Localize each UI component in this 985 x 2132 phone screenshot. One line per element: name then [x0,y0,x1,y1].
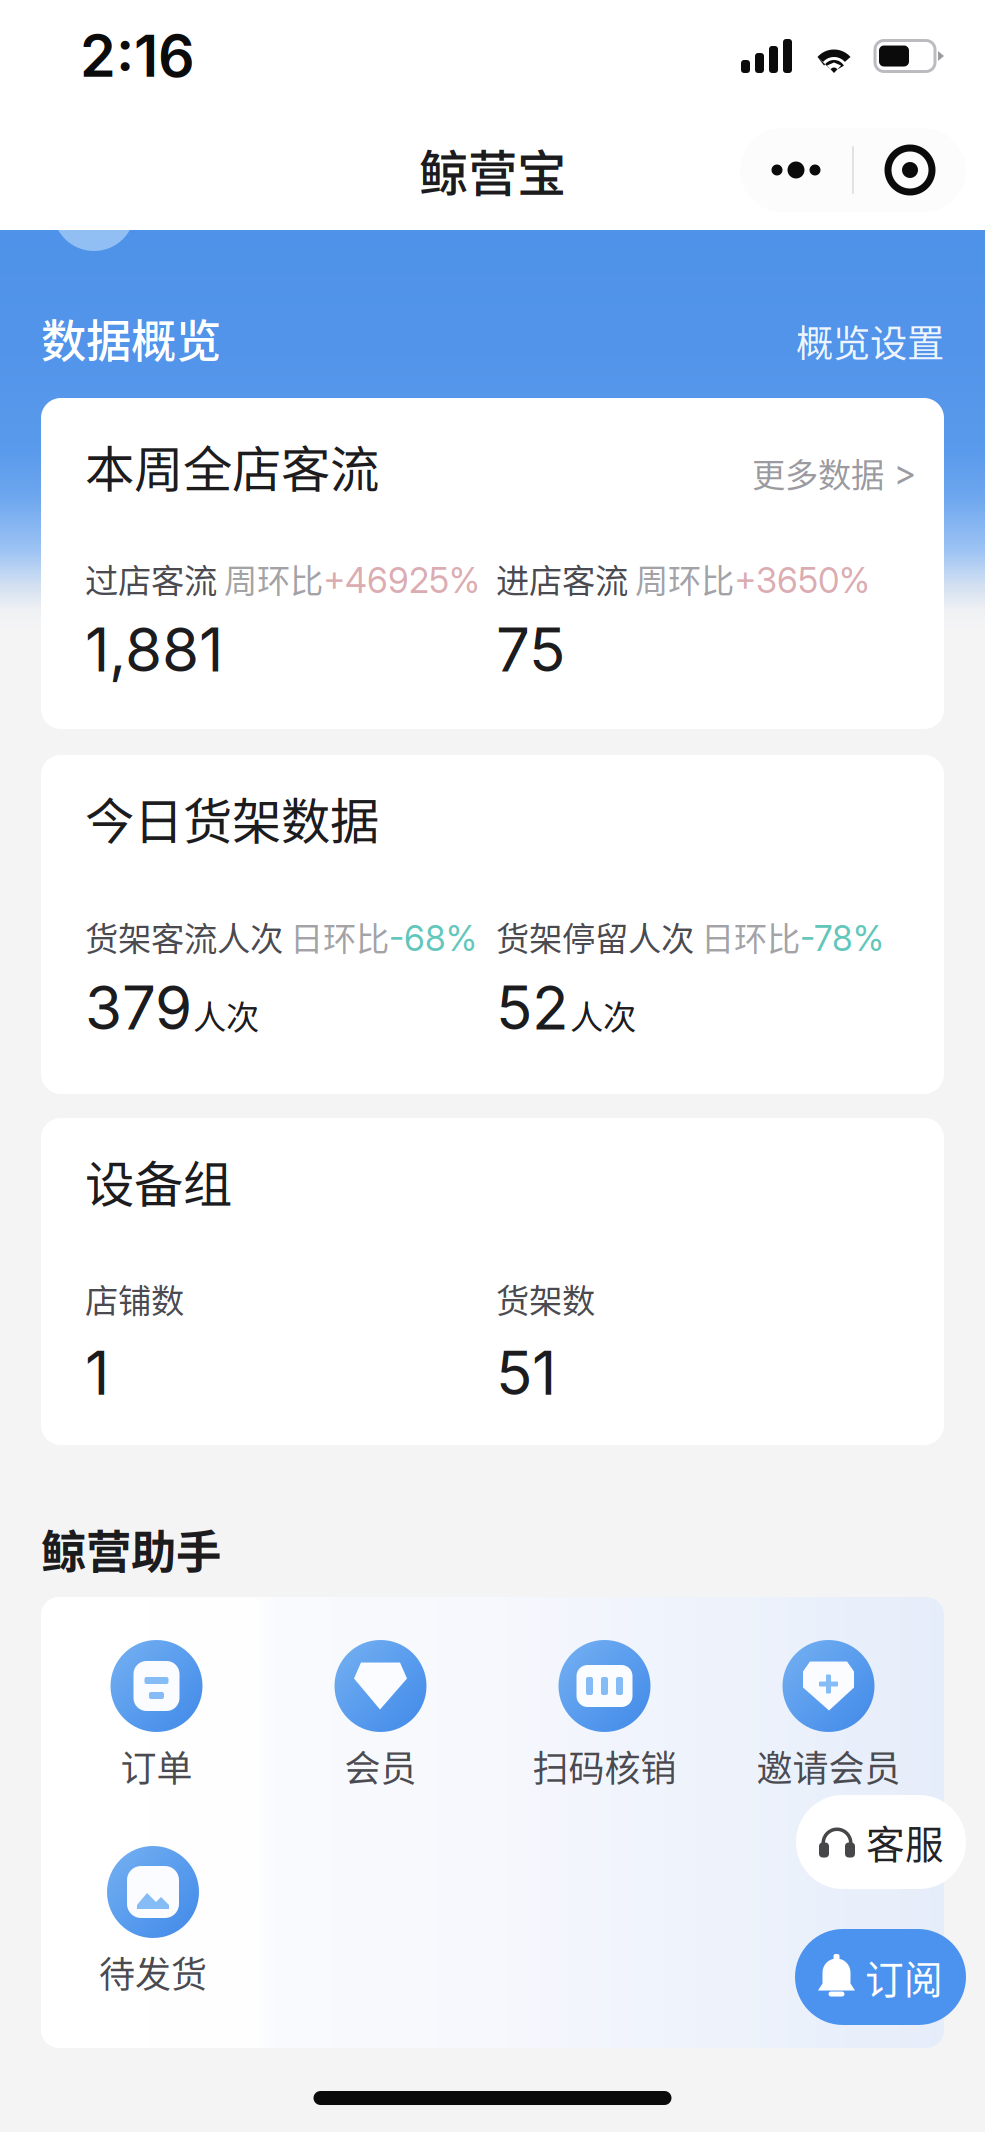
button[interactable]: 邀请会员 [716,1640,940,1798]
staticText: 概览设置 [796,314,944,368]
staticText: > [894,452,916,494]
staticText: 货架停留人次 [496,912,694,961]
staticText: 本周全店客流 [85,430,379,501]
staticText: -78% [800,917,884,959]
button[interactable]: 会员 [268,1640,492,1798]
staticText: 数据概览 [41,305,221,371]
button[interactable]: 扫码核销 [492,1640,716,1798]
button[interactable]: 概览设置 [796,314,944,371]
staticText: 人次 [570,991,636,1039]
staticText: +3650% [734,559,870,601]
button[interactable]: 更多 [740,128,966,212]
staticText: 1 [85,1337,109,1409]
staticText: 379 [85,971,192,1044]
staticText: 今日货架数据 [85,782,379,853]
button[interactable]: 客服 [796,1795,966,1889]
staticText: 货架数 [496,1274,595,1323]
staticText: 进店客流 [496,554,628,603]
staticText: 日环比 [694,912,800,961]
staticText: 51 [496,1337,556,1409]
button[interactable]: 订单 [44,1640,268,1798]
staticText: 75 [496,613,565,686]
staticText: 过店客流 [85,554,217,603]
button[interactable]: 订阅 [795,1929,966,2025]
staticText: 周环比 [217,554,323,603]
staticText: 52 [496,971,569,1044]
staticText: 待发货 [99,1946,207,1998]
staticText: 周环比 [628,554,734,603]
staticText: 2:16 [80,21,195,91]
staticText: 1,881 [85,613,223,686]
staticText: 店铺数 [85,1274,184,1323]
button[interactable]: 待发货 [41,1846,265,2004]
staticText: 人次 [193,991,259,1039]
button[interactable]: 更多数据 [752,449,916,497]
staticText: 鲸营宝 [419,134,566,206]
staticText: 订阅 [865,1949,943,2005]
staticText: 邀请会员 [756,1740,900,1792]
staticText: 客服 [866,1814,944,1870]
staticText: +46925% [323,559,480,601]
staticText: 扫码核销 [532,1740,676,1792]
staticText: 订单 [120,1740,192,1792]
staticText: 鲸营助手 [41,1516,221,1582]
staticText: 设备组 [85,1145,232,1216]
staticText: 货架客流人次 [85,912,283,961]
staticText: 更多数据 [752,449,884,497]
staticText: -68% [389,917,477,959]
staticText: 日环比 [283,912,389,961]
staticText: 会员 [344,1740,416,1792]
